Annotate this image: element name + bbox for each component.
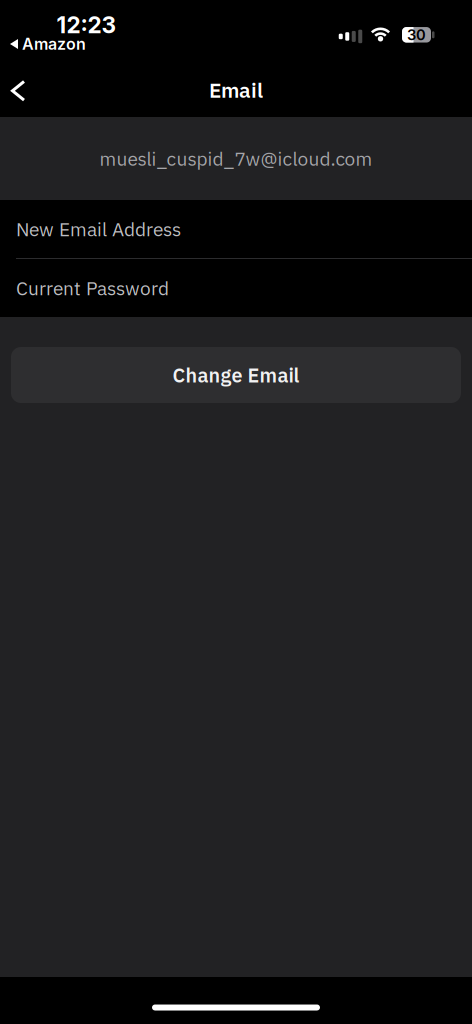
staticText: 12:23: [56, 11, 116, 39]
button[interactable]: Change Email: [11, 347, 461, 403]
button[interactable]: Back: [9, 79, 35, 102]
staticText: Email: [209, 76, 263, 103]
staticText: Current Password: [16, 276, 169, 300]
button[interactable]: Current Password: [0, 259, 472, 317]
staticText: New Email Address: [16, 217, 181, 241]
staticText: Amazon: [22, 34, 86, 54]
button[interactable]: New Email Address: [0, 200, 472, 258]
staticText: 30: [407, 26, 426, 44]
staticText: muesli_cuspid_7w@icloud.com: [99, 146, 372, 171]
staticText: Change Email: [172, 362, 299, 388]
